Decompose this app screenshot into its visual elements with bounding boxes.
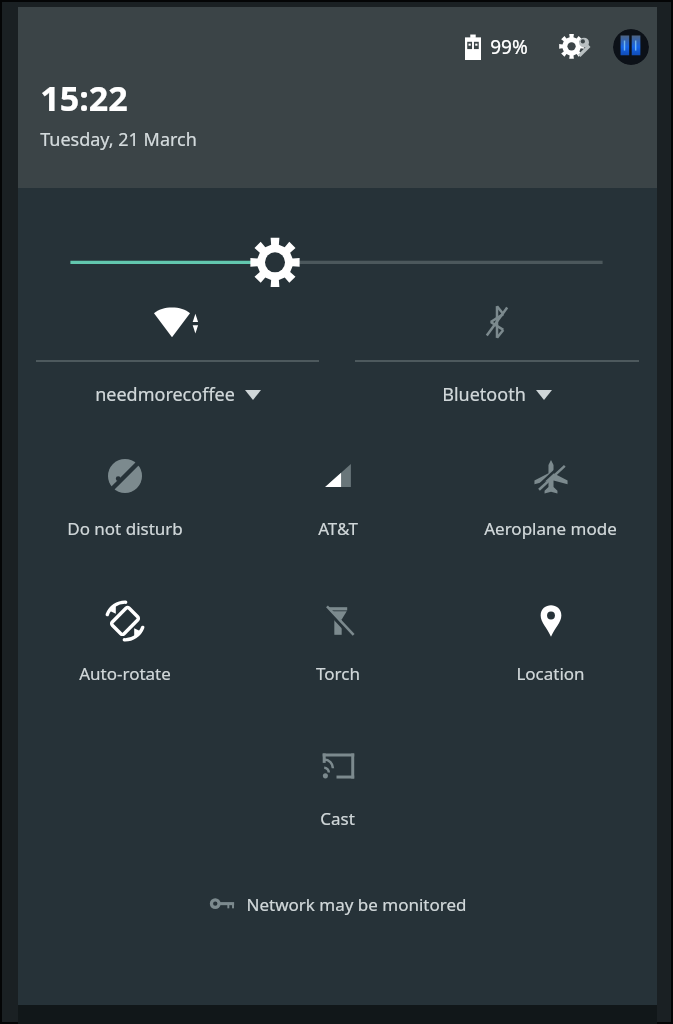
button[interactable]: Auto-rotate: [18, 576, 231, 685]
staticText: 15:22: [40, 75, 128, 121]
button[interactable]: Wi-Fi needmorecoffee: [18, 276, 337, 407]
button[interactable]: AT&T: [231, 431, 444, 540]
staticText: 99%: [490, 34, 528, 60]
button[interactable]: 15:22: [40, 75, 197, 152]
staticText: Tuesday, 21 March: [40, 127, 197, 152]
button[interactable]: User profile: [613, 29, 649, 65]
button[interactable]: Brightness: [18, 188, 657, 276]
button[interactable]: Aeroplane mode: [444, 431, 657, 540]
staticText: AT&T: [318, 517, 358, 540]
staticText: needmorecoffee: [95, 382, 235, 407]
staticText: Do not disturb: [67, 517, 183, 540]
button[interactable]: Settings: [555, 30, 601, 64]
staticText: Aeroplane mode: [484, 517, 617, 540]
staticText: Cast: [320, 807, 355, 830]
button[interactable]: Torch: [231, 576, 444, 685]
staticText: Bluetooth: [442, 382, 526, 407]
button[interactable]: Do not disturb: [18, 431, 231, 540]
staticText: Network may be monitored: [246, 893, 467, 916]
button[interactable]: Location: [444, 576, 657, 685]
button[interactable]: Cast: [231, 721, 444, 830]
staticText: Auto-rotate: [79, 662, 171, 685]
staticText: Torch: [316, 662, 360, 685]
button[interactable]: Bluetooth: [337, 276, 657, 407]
button[interactable]: Network may be monitored: [18, 878, 657, 930]
button[interactable]: Battery 99 percent: [463, 34, 483, 60]
staticText: Location: [516, 662, 585, 685]
